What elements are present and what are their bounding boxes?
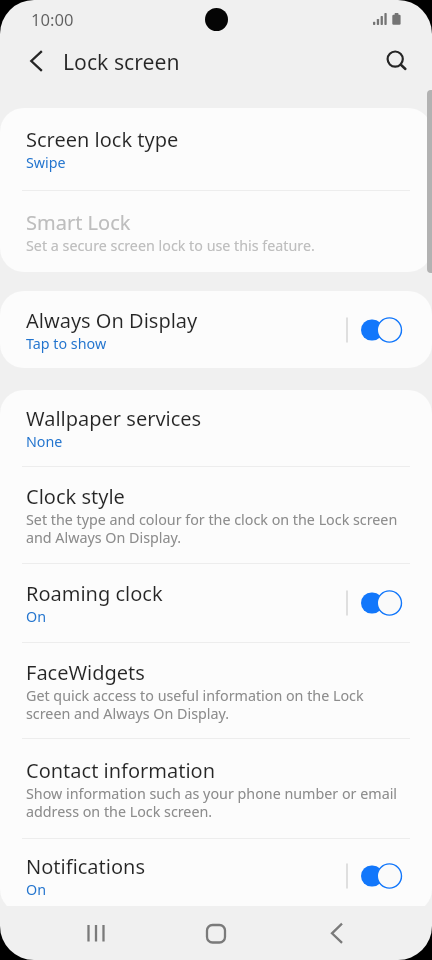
staticText: Lock screen bbox=[63, 47, 180, 76]
button[interactable]: Always On Display bbox=[0, 291, 432, 368]
staticText: Clock style bbox=[26, 483, 125, 510]
button[interactable]: Clock style bbox=[0, 467, 432, 563]
staticText: None bbox=[26, 432, 63, 451]
staticText: Set a secure screen lock to use this fea… bbox=[26, 236, 315, 255]
staticText: Screen lock type bbox=[26, 126, 179, 153]
button[interactable]: Wallpaper services bbox=[0, 390, 432, 466]
button[interactable]: Toggle bbox=[346, 580, 408, 626]
staticText: Smart Lock bbox=[26, 209, 131, 236]
staticText: Contact information bbox=[26, 757, 216, 784]
button[interactable]: Navigate up bbox=[15, 40, 57, 82]
staticText: FaceWidgets bbox=[26, 659, 145, 686]
button[interactable]: Toggle bbox=[346, 853, 408, 899]
staticText: Get quick access to useful information o… bbox=[26, 686, 404, 723]
button[interactable]: Screen lock type bbox=[0, 108, 432, 190]
staticText: On bbox=[26, 880, 47, 899]
button[interactable]: Back bbox=[309, 905, 365, 960]
staticText: On bbox=[26, 607, 47, 626]
staticText: Roaming clock bbox=[26, 580, 163, 607]
staticText: Notifications bbox=[26, 853, 145, 880]
button[interactable]: Notifications bbox=[0, 839, 432, 906]
staticText: Swipe bbox=[26, 153, 66, 172]
button[interactable]: Toggle bbox=[346, 307, 408, 353]
staticText: Always On Display bbox=[26, 307, 198, 334]
button[interactable]: Search bbox=[375, 41, 417, 83]
button[interactable]: FaceWidgets bbox=[0, 643, 432, 738]
staticText: Show information such as your phone numb… bbox=[26, 784, 404, 821]
staticText: Set the type and colour for the clock on… bbox=[26, 510, 404, 547]
button[interactable]: Home bbox=[188, 905, 244, 960]
button[interactable]: Contact information bbox=[0, 739, 432, 838]
staticText: Tap to show bbox=[26, 334, 107, 353]
button[interactable]: Recent apps bbox=[68, 905, 124, 960]
staticText: 10:00 bbox=[31, 8, 74, 31]
button[interactable]: Roaming clock bbox=[0, 564, 432, 642]
button[interactable]: Smart Lock bbox=[0, 191, 432, 272]
staticText: Wallpaper services bbox=[26, 405, 202, 432]
